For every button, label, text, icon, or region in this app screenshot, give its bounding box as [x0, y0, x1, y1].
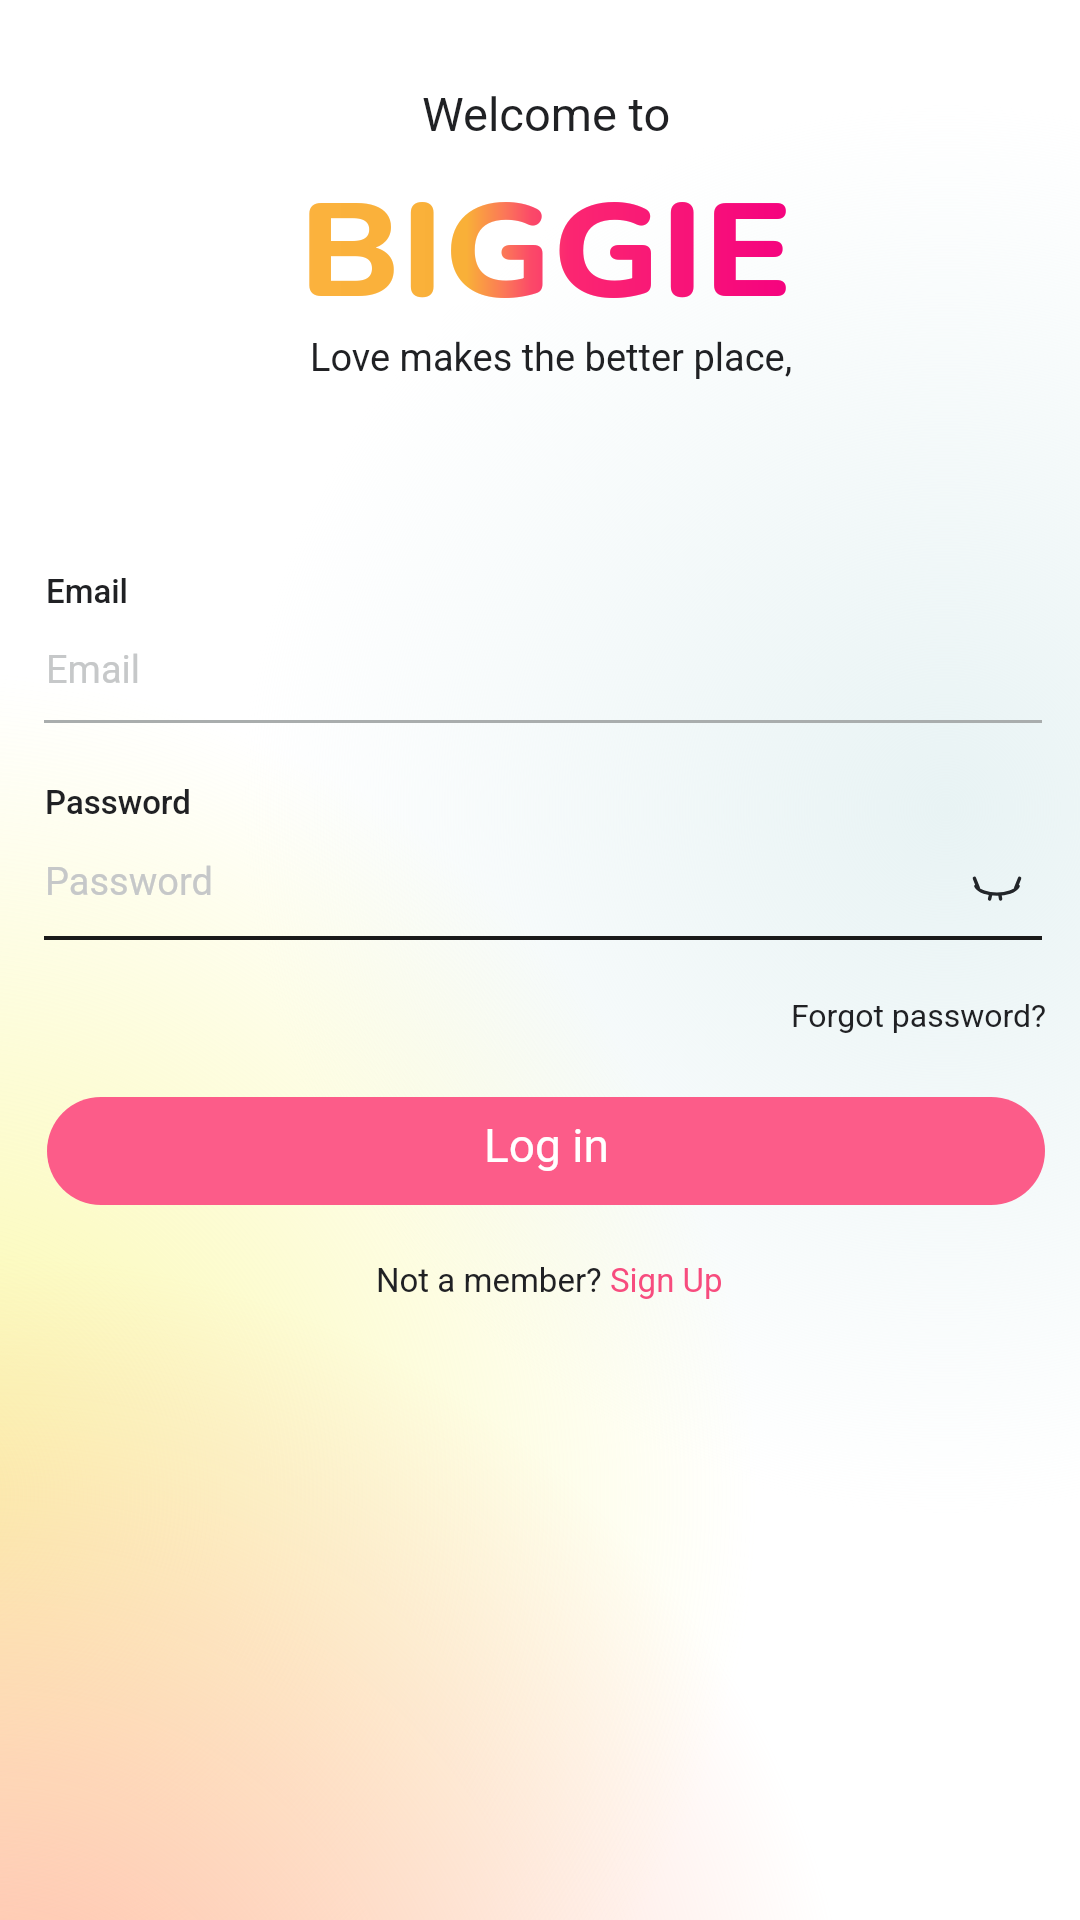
staticText: Password [45, 783, 191, 822]
staticText: Welcome to [422, 87, 671, 142]
staticText: Forgot password? [791, 997, 1047, 1035]
button[interactable]: Password [44, 777, 1042, 940]
button[interactable]: Sign Up [610, 1261, 723, 1300]
button[interactable]: Forgot password? [803, 985, 1059, 1023]
staticText: Email [46, 648, 141, 693]
staticText: BIGGIE [299, 163, 793, 341]
button[interactable]: Log in [47, 1097, 1045, 1205]
button[interactable]: Email [44, 566, 1042, 726]
staticText: Love makes the better place, [310, 336, 793, 381]
staticText: Sign Up [610, 1261, 723, 1300]
button[interactable]: Show password [949, 852, 1045, 924]
staticText: Password [45, 860, 213, 905]
staticText: Not a member? [376, 1261, 610, 1300]
staticText: Log in [484, 1119, 609, 1173]
staticText: Email [46, 572, 129, 611]
